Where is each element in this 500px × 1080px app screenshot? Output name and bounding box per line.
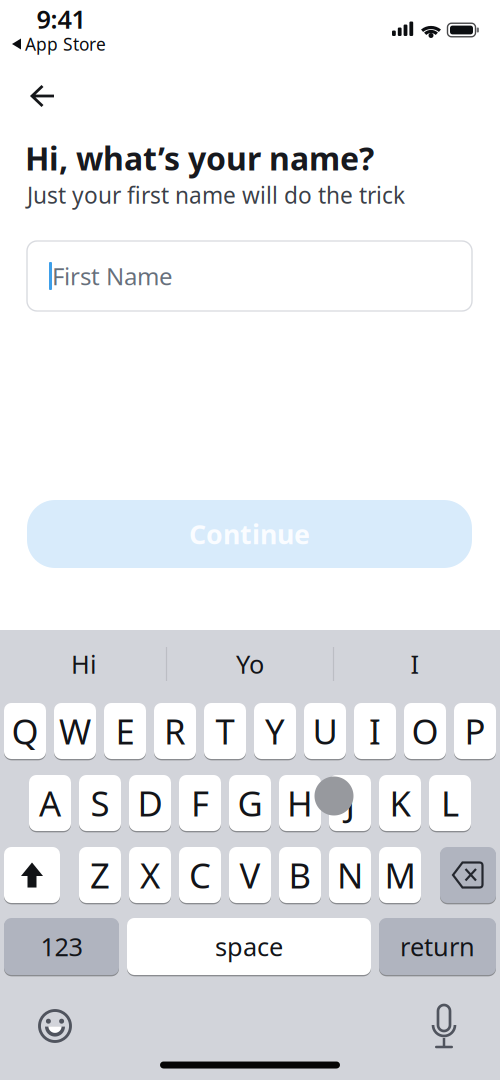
button[interactable]: D bbox=[129, 774, 171, 832]
staticText: W bbox=[59, 708, 91, 754]
button[interactable]: space bbox=[127, 917, 371, 976]
staticText: I bbox=[369, 708, 381, 754]
staticText: D bbox=[137, 780, 162, 826]
staticText: Hi, what’s your name? bbox=[25, 137, 374, 179]
staticText: App Store bbox=[25, 32, 106, 55]
button[interactable]: L bbox=[429, 774, 471, 832]
staticText: return bbox=[400, 930, 475, 963]
staticText: U bbox=[312, 708, 337, 754]
staticText: Yo bbox=[236, 647, 264, 681]
button[interactable]: Back bbox=[32, 86, 54, 106]
staticText: S bbox=[90, 780, 109, 826]
button[interactable]: First Name bbox=[27, 241, 472, 311]
staticText: K bbox=[389, 780, 410, 826]
button[interactable]: B bbox=[279, 846, 321, 904]
button[interactable]: P bbox=[454, 702, 496, 760]
staticText: C bbox=[189, 852, 211, 898]
staticText: 123 bbox=[40, 930, 82, 963]
staticText: L bbox=[441, 780, 459, 826]
button[interactable]: Delete bbox=[440, 846, 496, 904]
button[interactable]: T bbox=[204, 702, 246, 760]
staticText: Continue bbox=[189, 516, 310, 552]
button[interactable]: N bbox=[329, 846, 371, 904]
button[interactable]: M bbox=[379, 846, 421, 904]
staticText: Hi bbox=[71, 647, 97, 681]
staticText: Z bbox=[90, 852, 110, 898]
staticText: B bbox=[288, 852, 311, 898]
button[interactable]: C bbox=[179, 846, 221, 904]
staticText: T bbox=[215, 708, 234, 754]
staticText: G bbox=[237, 780, 262, 826]
button[interactable]: I bbox=[354, 702, 396, 760]
staticText: M bbox=[384, 852, 415, 898]
button[interactable]: E bbox=[104, 702, 146, 760]
staticText: F bbox=[191, 780, 209, 826]
staticText: O bbox=[411, 708, 438, 754]
staticText: Q bbox=[11, 708, 38, 754]
staticText: 9:41 bbox=[36, 2, 85, 36]
button[interactable]: U bbox=[304, 702, 346, 760]
staticText: V bbox=[239, 852, 260, 898]
staticText: A bbox=[39, 780, 61, 826]
button[interactable]: W bbox=[54, 702, 96, 760]
staticText: I bbox=[410, 647, 419, 681]
button[interactable]: Yo bbox=[170, 639, 330, 689]
button[interactable]: O bbox=[404, 702, 446, 760]
staticText: P bbox=[464, 708, 485, 754]
button[interactable]: S bbox=[79, 774, 121, 832]
staticText: Just your first name will do the trick bbox=[27, 180, 405, 210]
button[interactable]: return bbox=[379, 917, 496, 976]
button[interactable]: G bbox=[229, 774, 271, 832]
staticText: Y bbox=[265, 708, 285, 754]
button[interactable]: Continue bbox=[27, 500, 472, 568]
button[interactable]: Z bbox=[79, 846, 121, 904]
button[interactable]: R bbox=[154, 702, 196, 760]
button[interactable]: A bbox=[29, 774, 71, 832]
staticText: J bbox=[345, 780, 354, 826]
button[interactable]: Q bbox=[4, 702, 46, 760]
staticText: space bbox=[215, 930, 283, 963]
button[interactable]: J bbox=[329, 774, 371, 832]
button[interactable]: I bbox=[335, 639, 495, 689]
button[interactable]: 123 bbox=[4, 917, 119, 976]
staticText: R bbox=[164, 708, 186, 754]
button[interactable]: Emoji bbox=[38, 1009, 72, 1043]
staticText: H bbox=[287, 780, 313, 826]
staticText: First Name bbox=[52, 260, 173, 292]
button[interactable]: H bbox=[279, 774, 321, 832]
staticText: X bbox=[140, 852, 160, 898]
button[interactable]: Hi bbox=[4, 639, 164, 689]
button[interactable]: F bbox=[179, 774, 221, 832]
button[interactable]: App Store bbox=[12, 32, 106, 55]
button[interactable]: Y bbox=[254, 702, 296, 760]
button[interactable]: V bbox=[229, 846, 271, 904]
button[interactable]: Dictate bbox=[429, 1005, 459, 1049]
button[interactable]: K bbox=[379, 774, 421, 832]
staticText: E bbox=[115, 708, 134, 754]
button[interactable]: Shift bbox=[4, 846, 60, 904]
staticText: N bbox=[337, 852, 363, 898]
button[interactable]: X bbox=[129, 846, 171, 904]
